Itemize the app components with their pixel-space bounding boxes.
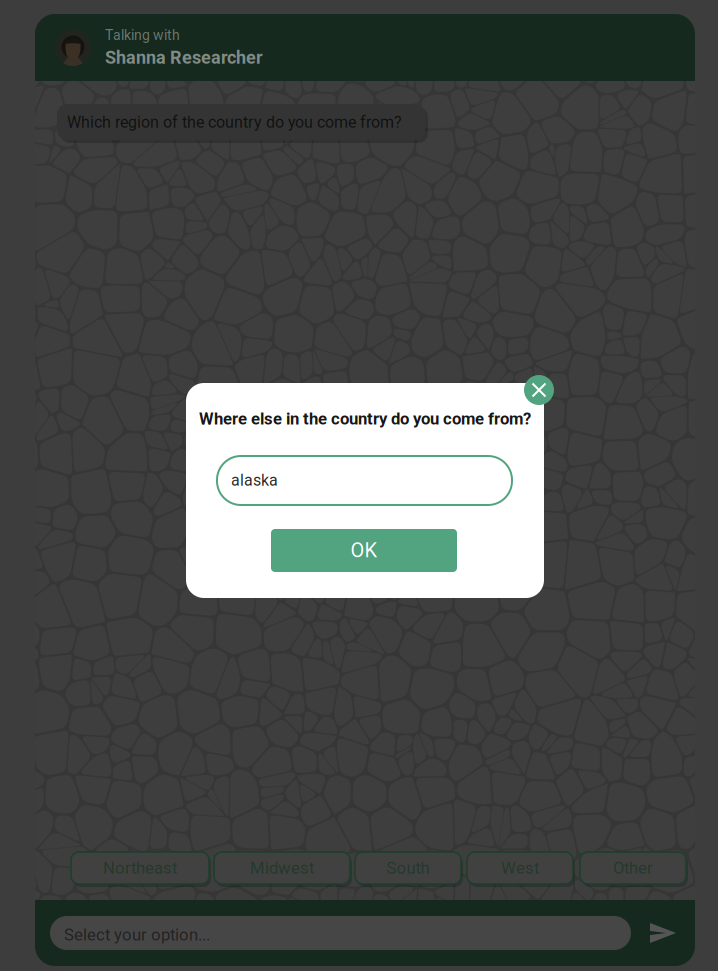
- button[interactable]: South: [355, 852, 461, 884]
- button[interactable]: Midwest: [214, 852, 350, 884]
- staticText: alaska: [231, 471, 278, 490]
- button[interactable]: Send: [648, 920, 678, 946]
- button[interactable]: OK: [271, 529, 457, 572]
- button[interactable]: Select your option...: [50, 916, 631, 950]
- button[interactable]: West: [467, 852, 573, 884]
- button[interactable]: Northeast: [71, 852, 209, 884]
- staticText: Where else in the country do you come fr…: [199, 409, 531, 428]
- staticText: OK: [350, 539, 377, 562]
- staticText: South: [386, 858, 429, 878]
- button[interactable]: alaska: [217, 456, 512, 505]
- staticText: Which region of the country do you come …: [67, 113, 402, 132]
- staticText: Northeast: [103, 858, 177, 878]
- staticText: Select your option...: [64, 925, 210, 944]
- staticText: Midwest: [250, 858, 314, 878]
- button[interactable]: Other: [580, 852, 686, 884]
- staticText: West: [501, 858, 539, 878]
- staticText: Other: [613, 858, 653, 878]
- staticText: Shanna Researcher: [105, 47, 263, 68]
- button[interactable]: Close: [524, 375, 554, 405]
- staticText: Talking with: [105, 27, 180, 43]
